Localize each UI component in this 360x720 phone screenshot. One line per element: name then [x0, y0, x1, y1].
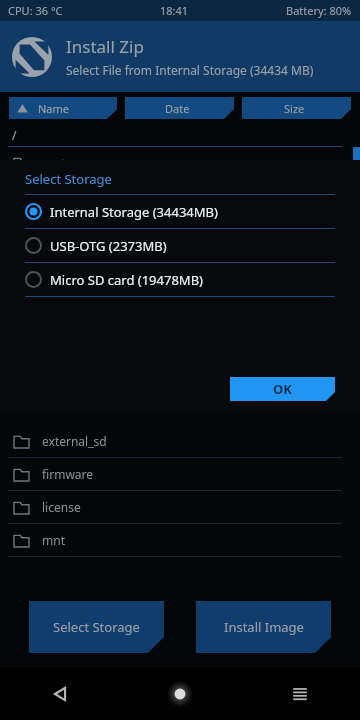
staticText: external_sd — [42, 433, 107, 449]
button[interactable]: license — [0, 491, 360, 523]
staticText: Size — [284, 101, 305, 116]
staticText: USB-OTG (2373MB) — [50, 237, 167, 255]
staticText: Select Storage — [25, 170, 112, 188]
button[interactable]: Back — [0, 668, 120, 720]
staticText: firmware — [42, 466, 94, 482]
button[interactable]: external_sd — [0, 425, 360, 457]
button[interactable]: Date — [125, 97, 234, 119]
button[interactable]: OK — [230, 377, 335, 401]
button[interactable]: Name — [9, 97, 117, 119]
button[interactable]: Size — [242, 97, 351, 119]
button[interactable]: Install Image — [196, 601, 331, 653]
staticText: / — [12, 127, 17, 143]
staticText: Select File from Internal Storage (34434… — [66, 62, 314, 78]
button[interactable]: mnt — [0, 524, 360, 556]
button[interactable]: Recent apps — [240, 668, 360, 720]
staticText: Micro SD card (19478MB) — [50, 271, 203, 289]
button[interactable]: firmware — [0, 458, 360, 490]
staticText: Select Storage — [53, 618, 140, 636]
staticText: Install Zip — [66, 35, 144, 58]
button[interactable]: USB-OTG (2373MB) — [0, 229, 360, 262]
staticText: Internal Storage (34434MB) — [50, 203, 218, 221]
staticText: Date — [165, 101, 190, 116]
button[interactable]: Home — [120, 668, 240, 720]
button[interactable]: Micro SD card (19478MB) — [0, 263, 360, 296]
staticText: CPU: 36 °C — [8, 3, 63, 18]
staticText: mnt — [42, 532, 65, 548]
button[interactable]: Select Storage — [29, 601, 164, 653]
staticText: OK — [273, 380, 292, 398]
staticText: Battery: 80% — [286, 3, 352, 18]
staticText: license — [42, 499, 81, 515]
staticText: 18:41 — [160, 3, 189, 18]
button[interactable]: root — [0, 147, 360, 179]
staticText: Install Image — [224, 618, 304, 636]
button[interactable]: Internal Storage (34434MB) — [0, 195, 360, 228]
staticText: Name — [38, 101, 70, 116]
